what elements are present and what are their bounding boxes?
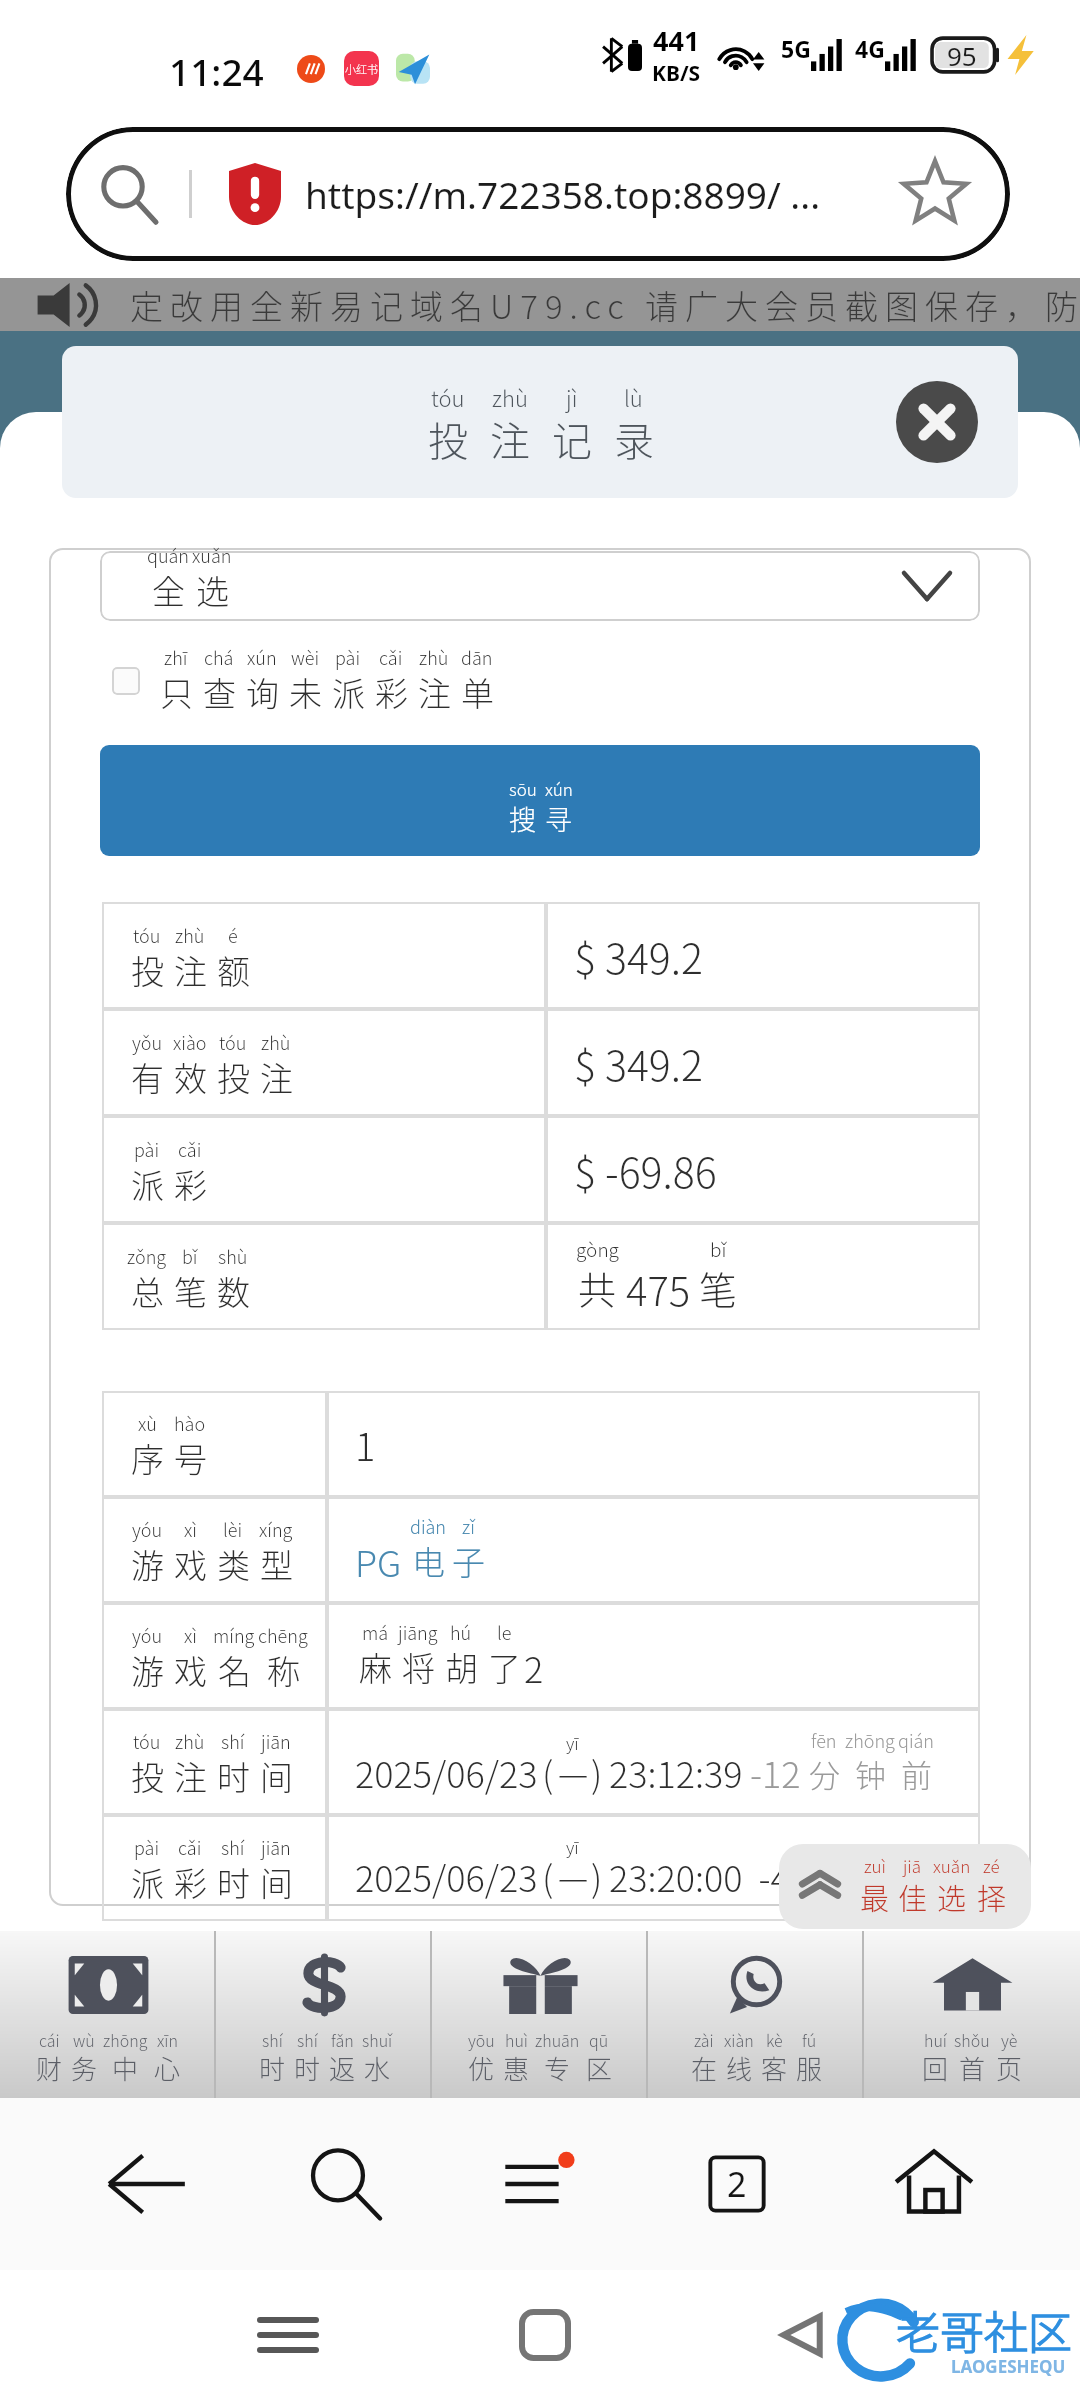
- button[interactable]: Back: [61, 2098, 233, 2270]
- staticText: míng: [213, 1622, 255, 1648]
- staticText: 23:20:00 -4: [609, 1850, 790, 1902]
- staticText: quán: [147, 542, 189, 568]
- staticText: 区: [586, 2049, 613, 2087]
- staticText: cǎi: [178, 1136, 202, 1162]
- staticText: cǎi: [379, 644, 403, 670]
- staticText: 麻: [359, 1643, 392, 1691]
- staticText: yī: [566, 1834, 579, 1859]
- staticText: 返: [329, 2049, 356, 2087]
- staticText: 95: [947, 38, 977, 73]
- button[interactable]: Rebate: [216, 1931, 432, 2098]
- staticText: 一: [558, 1753, 588, 1796]
- staticText: shǒu: [954, 2028, 990, 2051]
- staticText: zhù: [175, 1728, 205, 1754]
- staticText: fēn: [811, 1727, 837, 1753]
- staticText: zhù: [175, 922, 205, 948]
- staticText: 4G: [855, 33, 885, 64]
- staticText: kè: [766, 2028, 783, 2051]
- staticText: 型: [260, 1540, 293, 1588]
- staticText: fǎn: [331, 2028, 354, 2051]
- staticText: 回: [922, 2049, 949, 2087]
- staticText: 老哥社区: [896, 2298, 1072, 2362]
- button[interactable]: Search: [258, 2098, 430, 2270]
- button[interactable]: Search: [66, 127, 1010, 261]
- staticText: 2025/06/23: [355, 1746, 538, 1798]
- staticText: pài: [134, 1136, 160, 1162]
- staticText: xún: [545, 776, 573, 801]
- button[interactable]: Close: [896, 381, 978, 463]
- other: Scroll to top: [799, 1868, 841, 1906]
- staticText: 戏: [174, 1540, 207, 1588]
- staticText: yōu: [468, 2028, 495, 2051]
- staticText: 线: [726, 2049, 753, 2087]
- staticText: 注: [260, 1053, 293, 1101]
- button[interactable]: Promotions: [432, 1931, 648, 2098]
- staticText: 了: [488, 1643, 521, 1691]
- staticText: 派: [131, 1858, 164, 1906]
- staticText: 客: [761, 2049, 788, 2087]
- staticText: 服: [796, 2049, 823, 2087]
- staticText: 在: [691, 2049, 718, 2087]
- staticText: 间: [260, 1752, 293, 1800]
- staticText: $ 349.2: [574, 1033, 703, 1092]
- other: Search: [99, 164, 159, 224]
- staticText: yè: [1001, 2028, 1018, 2051]
- staticText: má: [362, 1619, 389, 1645]
- staticText: 2025/06/23: [355, 1850, 538, 1902]
- staticText: bǐ: [710, 1235, 727, 1263]
- staticText: 记: [552, 410, 592, 468]
- button[interactable]: Home: [848, 2098, 1020, 2270]
- staticText: 数: [217, 1267, 250, 1315]
- staticText: LAOGESHEQU: [951, 2355, 1066, 2378]
- staticText: 彩: [375, 668, 408, 716]
- button[interactable]: Home: [465, 2270, 625, 2400]
- button[interactable]: sōu: [100, 745, 980, 856]
- staticText: le: [497, 1619, 512, 1645]
- staticText: shí: [262, 2028, 283, 2051]
- staticText: 投: [217, 1053, 250, 1101]
- button[interactable]: zhī: [112, 653, 497, 709]
- staticText: xù: [138, 1410, 157, 1436]
- button[interactable]: Menu: [452, 2098, 624, 2270]
- staticText: zhuān: [535, 2028, 580, 2051]
- staticText: 惠: [503, 2049, 530, 2087]
- button[interactable]: Finance center: [0, 1931, 216, 2098]
- button[interactable]: Scroll to top: [779, 1844, 1031, 1929]
- staticText: huì: [505, 2028, 528, 2051]
- staticText: 水: [364, 2049, 391, 2087]
- staticText: 中: [112, 2049, 139, 2087]
- staticText: fú: [802, 2028, 817, 2051]
- staticText: 475: [626, 1260, 691, 1318]
- button[interactable]: Tabs: [651, 2098, 823, 2270]
- staticText: shí: [221, 1728, 245, 1754]
- staticText: 子: [452, 1537, 485, 1585]
- staticText: jiāng: [398, 1619, 438, 1645]
- staticText: zhōng: [845, 1727, 895, 1753]
- staticText: 单: [461, 668, 494, 716]
- staticText: 务: [71, 2049, 98, 2087]
- staticText: 搜: [509, 799, 536, 838]
- staticText: 时: [217, 1752, 250, 1800]
- staticText: 专: [544, 2049, 571, 2087]
- staticText: 只: [160, 668, 193, 716]
- staticText: xīn: [157, 2028, 178, 2051]
- staticText: zé: [983, 1853, 1000, 1878]
- button[interactable]: Back: [723, 2270, 883, 2400]
- staticText: 总: [131, 1267, 164, 1315]
- staticText: 财: [36, 2049, 63, 2087]
- staticText: xiào: [173, 1029, 207, 1055]
- button[interactable]: Recents: [208, 2270, 368, 2400]
- staticText: 11:24: [169, 46, 264, 96]
- staticText: 名: [218, 1646, 251, 1694]
- staticText: $ 349.2: [574, 926, 703, 985]
- staticText: yóu: [132, 1622, 163, 1648]
- staticText: zǒng: [127, 1243, 167, 1269]
- button[interactable]: Home: [864, 1931, 1080, 2098]
- staticText: 择: [977, 1876, 1007, 1918]
- staticText: yī: [566, 1730, 579, 1755]
- staticText: -12: [750, 1746, 801, 1798]
- button[interactable]: [100, 551, 980, 621]
- staticText: 首: [959, 2049, 986, 2087]
- staticText: 最: [860, 1876, 890, 1918]
- button[interactable]: Online support: [648, 1931, 864, 2098]
